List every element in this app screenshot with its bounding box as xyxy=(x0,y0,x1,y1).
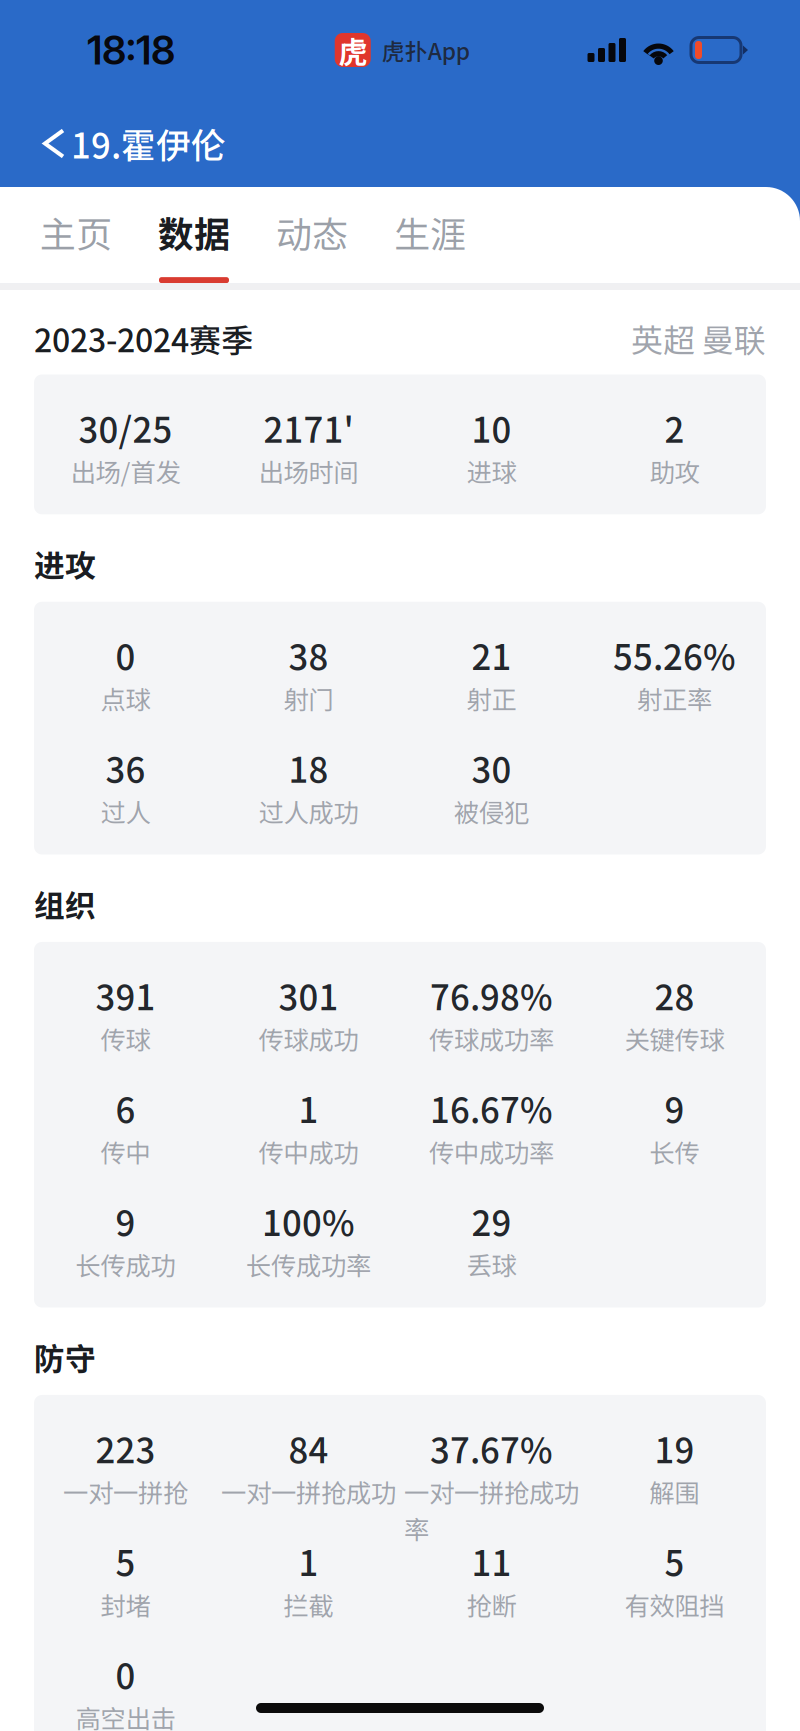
staticText: 主页 xyxy=(40,206,112,258)
staticText: 18 xyxy=(288,743,328,793)
staticText: 生涯 xyxy=(394,206,466,258)
staticText: 长传成功 xyxy=(75,1246,175,1283)
staticText: 一对一拼抢 xyxy=(63,1473,188,1510)
staticText: 38 xyxy=(288,630,328,680)
staticText: 2171' xyxy=(263,402,353,453)
staticText: 19.霍伊伦 xyxy=(71,118,226,169)
staticText: 0 xyxy=(115,630,135,680)
staticText: 301 xyxy=(278,970,338,1020)
staticText: 30/25 xyxy=(78,402,172,453)
staticText: 被侵犯 xyxy=(454,793,529,829)
staticText: 传中成功 xyxy=(258,1133,358,1170)
staticText: 长传成功率 xyxy=(246,1246,371,1283)
staticText: 一对一拼抢成功率 xyxy=(404,1473,579,1547)
staticText: 过人 xyxy=(100,793,150,829)
staticText: 6 xyxy=(115,1083,135,1133)
staticText: 动态 xyxy=(276,206,348,258)
staticText: 解围 xyxy=(649,1473,699,1510)
staticText: 0 xyxy=(115,1649,135,1699)
staticText: 射正率 xyxy=(637,680,712,717)
staticText: 封堵 xyxy=(100,1586,150,1623)
staticText: 进攻 xyxy=(34,541,96,586)
staticText: 虎扑App xyxy=(382,34,470,66)
staticText: 虎 xyxy=(338,29,367,71)
staticText: 21 xyxy=(471,630,511,680)
staticText: 传球成功率 xyxy=(429,1020,554,1057)
button[interactable]: 19.霍伊伦 xyxy=(0,118,226,169)
staticText: 过人成功 xyxy=(258,793,358,829)
staticText: 传球成功 xyxy=(258,1020,358,1057)
staticText: 关键传球 xyxy=(624,1020,724,1057)
staticText: 1 xyxy=(298,1536,318,1586)
staticText: 射正 xyxy=(466,680,516,717)
staticText: 100% xyxy=(262,1196,355,1246)
staticText: 组织 xyxy=(34,881,96,926)
staticText: 10 xyxy=(471,402,511,453)
staticText: 76.98% xyxy=(430,970,553,1020)
staticText: 19 xyxy=(654,1423,694,1473)
staticText: 9 xyxy=(664,1083,684,1133)
staticText: 防守 xyxy=(34,1335,96,1379)
staticText: 进球 xyxy=(466,453,516,489)
staticText: 391 xyxy=(95,970,155,1020)
staticText: 有效阻挡 xyxy=(624,1586,724,1623)
button[interactable]: 数据 xyxy=(135,187,253,283)
staticText: 拦截 xyxy=(283,1586,333,1623)
staticText: 30 xyxy=(471,743,511,793)
staticText: 丢球 xyxy=(466,1246,516,1283)
staticText: 抢断 xyxy=(466,1586,516,1623)
staticText: 助攻 xyxy=(649,453,699,489)
staticText: 223 xyxy=(95,1423,155,1473)
staticText: 28 xyxy=(654,970,694,1020)
staticText: 1 xyxy=(298,1083,318,1133)
button[interactable]: 生涯 xyxy=(371,187,489,283)
staticText: 9 xyxy=(115,1196,135,1246)
staticText: 点球 xyxy=(100,680,150,717)
staticText: 18:18 xyxy=(87,26,175,74)
staticText: 一对一拼抢成功 xyxy=(221,1473,396,1510)
staticText: 16.67% xyxy=(430,1083,553,1133)
staticText: 射门 xyxy=(283,680,333,717)
staticText: 84 xyxy=(288,1423,328,1473)
staticText: 数据 xyxy=(158,206,230,258)
staticText: 36 xyxy=(105,743,145,793)
staticText: 高空出击 xyxy=(75,1699,175,1731)
staticText: 37.67% xyxy=(430,1423,553,1473)
staticText: 5 xyxy=(115,1536,135,1586)
staticText: 传中 xyxy=(100,1133,150,1170)
staticText: 传中成功率 xyxy=(429,1133,554,1170)
staticText: 29 xyxy=(471,1196,511,1246)
staticText: 英超 曼联 xyxy=(631,315,766,361)
staticText: 2 xyxy=(664,402,684,453)
button[interactable]: 主页 xyxy=(17,187,135,283)
staticText: 55.26% xyxy=(613,630,736,680)
staticText: 出场/首发 xyxy=(70,453,180,489)
staticText: 2023-2024赛季 xyxy=(34,315,253,361)
staticText: 长传 xyxy=(649,1133,699,1170)
staticText: 传球 xyxy=(100,1020,150,1057)
button[interactable]: 动态 xyxy=(253,187,371,283)
staticText: 5 xyxy=(664,1536,684,1586)
staticText: 出场时间 xyxy=(258,453,358,489)
staticText: 11 xyxy=(471,1536,511,1586)
